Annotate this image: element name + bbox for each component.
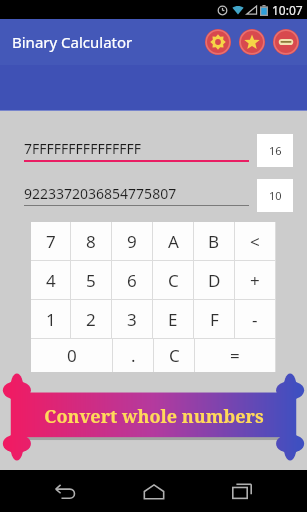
button[interactable]: Back <box>41 470 89 512</box>
button[interactable]: 7 <box>32 223 69 259</box>
staticText: 0 <box>67 344 77 367</box>
staticText: 7 <box>46 230 56 253</box>
staticText: 4 <box>46 269 56 292</box>
button[interactable]: < <box>236 223 274 259</box>
staticText: A <box>168 230 179 253</box>
staticText: B <box>208 230 220 253</box>
staticText: = <box>230 344 240 367</box>
staticText: F <box>210 308 219 331</box>
staticText: 1 <box>46 308 56 331</box>
staticText: - <box>252 308 258 331</box>
staticText: C <box>168 269 179 292</box>
button[interactable]: 3 <box>113 301 151 337</box>
staticText: C <box>169 344 180 367</box>
staticText: 9 <box>127 230 137 253</box>
button[interactable]: . <box>113 339 153 372</box>
staticText: 2 <box>86 308 96 331</box>
staticText: + <box>250 269 260 292</box>
button[interactable]: C <box>154 339 194 372</box>
button[interactable]: 2 <box>72 301 110 337</box>
staticText: 8 <box>86 230 96 253</box>
button[interactable]: 9 <box>113 223 151 259</box>
staticText: D <box>208 269 221 292</box>
button[interactable]: C <box>154 262 192 298</box>
button[interactable]: Recent apps <box>218 470 266 512</box>
button[interactable]: Rate app <box>239 29 265 55</box>
button[interactable]: 8 <box>72 223 110 259</box>
button[interactable]: + <box>236 262 274 298</box>
button[interactable]: A <box>154 223 192 259</box>
button[interactable]: 5 <box>72 262 110 298</box>
button[interactable]: = <box>195 339 275 372</box>
staticText: 9223372036854775807 <box>24 184 177 203</box>
staticText: Convert whole numbers <box>44 404 264 429</box>
staticText: < <box>250 230 260 253</box>
button[interactable]: 4 <box>32 262 69 298</box>
button[interactable]: 6 <box>113 262 151 298</box>
button[interactable]: 16 <box>257 134 293 167</box>
staticText: E <box>168 308 178 331</box>
staticText: 6 <box>127 269 137 292</box>
staticText: 5 <box>86 269 96 292</box>
button[interactable]: D <box>195 262 233 298</box>
button[interactable]: Settings <box>205 29 231 55</box>
button[interactable]: B <box>195 223 233 259</box>
staticText: Binary Calculator <box>12 32 133 52</box>
button[interactable]: F <box>195 301 233 337</box>
button[interactable]: - <box>236 301 274 337</box>
staticText: 7FFFFFFFFFFFFFFF <box>24 139 141 158</box>
button[interactable]: Remove ads <box>273 29 299 55</box>
staticText: 16 <box>269 143 282 158</box>
staticText: 10:07 <box>272 2 303 18</box>
button[interactable]: 1 <box>32 301 69 337</box>
staticText: 3 <box>127 308 137 331</box>
button[interactable]: Home <box>130 470 178 512</box>
staticText: . <box>131 344 136 367</box>
staticText: 10 <box>269 188 282 203</box>
button[interactable]: E <box>154 301 192 337</box>
button[interactable]: 10 <box>257 179 293 212</box>
button[interactable]: 0 <box>31 339 112 372</box>
